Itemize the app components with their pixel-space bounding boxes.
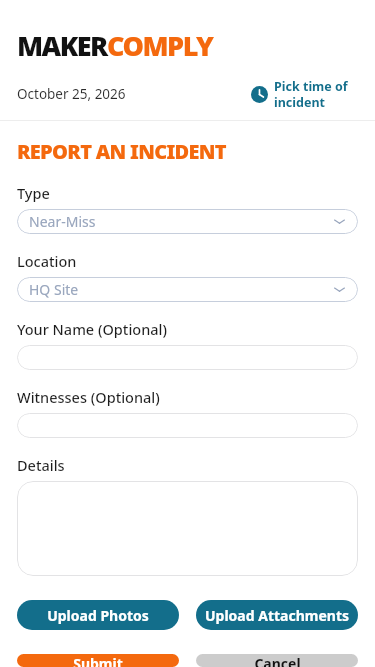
staticText: Upload Photos xyxy=(47,606,149,625)
staticText: Location xyxy=(17,251,77,271)
button[interactable]: HQ Site xyxy=(17,277,358,302)
staticText: COMPLY xyxy=(107,27,213,64)
staticText: MAKER xyxy=(17,27,107,64)
staticText: REPORT AN INCIDENT xyxy=(17,138,226,165)
staticText: Pick time of incident xyxy=(274,78,358,110)
staticText: Witnesses (Optional) xyxy=(17,387,160,407)
button[interactable]: Upload Attachments xyxy=(196,600,358,630)
staticText: Submit xyxy=(73,654,123,667)
staticText: Your Name (Optional) xyxy=(17,319,168,339)
button[interactable] xyxy=(17,481,358,576)
staticText: October 25, 2026 xyxy=(17,85,126,103)
staticText: Details xyxy=(17,455,65,475)
staticText: HQ Site xyxy=(29,280,79,299)
button[interactable] xyxy=(17,345,358,370)
button[interactable] xyxy=(17,413,358,438)
staticText: Upload Attachments xyxy=(205,606,349,625)
staticText: Near-Miss xyxy=(29,212,96,231)
button[interactable]: Pick time of incident xyxy=(251,76,358,112)
button[interactable]: Near-Miss xyxy=(17,209,358,234)
button[interactable]: Cancel xyxy=(196,654,358,667)
staticText: Type xyxy=(17,183,50,203)
staticText: Cancel xyxy=(254,654,301,667)
other: Pick time of incident xyxy=(251,86,268,103)
button[interactable]: Submit xyxy=(17,654,179,667)
button[interactable]: Upload Photos xyxy=(17,600,179,630)
